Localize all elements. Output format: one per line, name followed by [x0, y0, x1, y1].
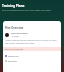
staticText: Pick a programme that fits your week and…: [2, 9, 51, 12]
staticText: Rest day scheduled: [5, 48, 24, 51]
staticText: 12 weeks: [11, 35, 20, 37]
button[interactable]: Tempo run: [5, 54, 59, 58]
staticText: Weekly mileage builds gradually with one…: [5, 39, 59, 45]
staticText: Training Plans: [2, 4, 25, 8]
button[interactable]: Recovery: [5, 59, 59, 63]
staticText: Plan Overview: [5, 26, 24, 30]
staticText: Tempo run: [8, 55, 19, 58]
button[interactable]: Rest day scheduled: [3, 47, 61, 51]
button[interactable]: Marathon Base: [5, 32, 59, 37]
staticText: Recovery: [8, 60, 17, 63]
staticText: Marathon Base: [11, 32, 28, 35]
